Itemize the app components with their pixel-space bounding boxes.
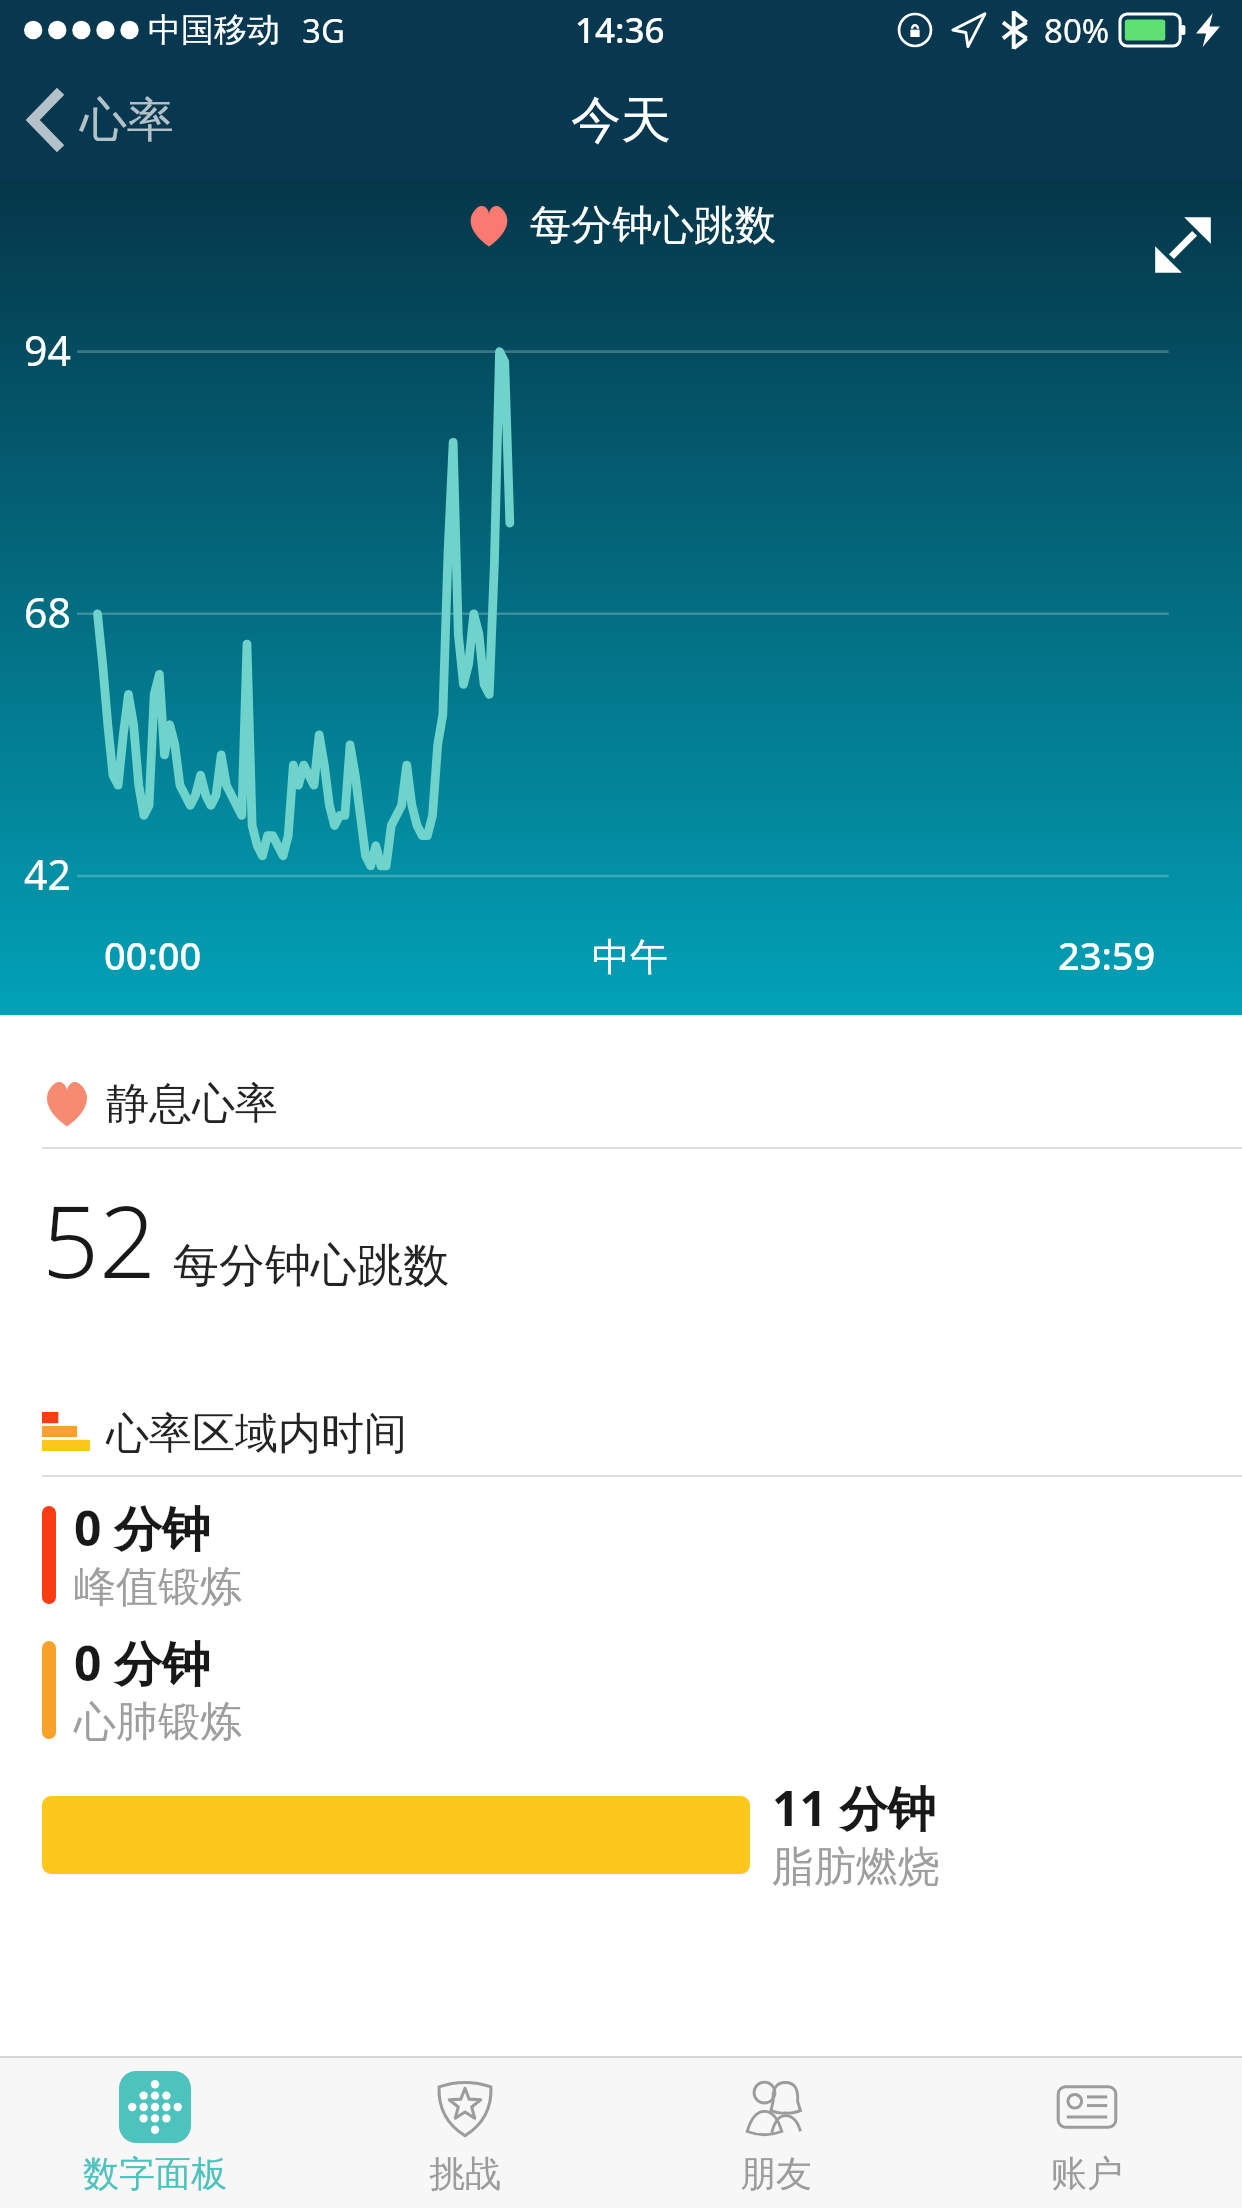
- staticText: 数字面板: [83, 2151, 227, 2196]
- button[interactable]: 数字面板: [0, 2058, 310, 2208]
- staticText: 账户: [1051, 2151, 1123, 2196]
- button[interactable]: 全屏显示图表: [1140, 202, 1226, 288]
- staticText: 52: [42, 1171, 157, 1307]
- staticText: 脂肪燃烧: [772, 1841, 940, 1894]
- staticText: 中午: [592, 933, 668, 981]
- button[interactable]: 朋友: [620, 2058, 931, 2208]
- staticText: 中国移动: [148, 9, 280, 51]
- staticText: 14:36: [575, 6, 665, 54]
- staticText: 68: [24, 584, 71, 640]
- staticText: 每分钟心跳数: [530, 200, 776, 252]
- button[interactable]: 挑战: [310, 2058, 620, 2208]
- staticText: 0 分钟: [74, 1630, 210, 1696]
- staticText: 80%: [1044, 8, 1110, 53]
- staticText: 0 分钟: [74, 1495, 210, 1561]
- button[interactable]: 返回 心率: [22, 78, 182, 162]
- staticText: 11 分钟: [772, 1775, 936, 1841]
- staticText: 00:00: [104, 929, 202, 981]
- button[interactable]: 11 分钟: [42, 1775, 1242, 1894]
- button[interactable]: 0 分钟: [42, 1630, 1242, 1749]
- staticText: 心肺锻炼: [74, 1696, 242, 1749]
- button[interactable]: 账户: [931, 2058, 1242, 2208]
- staticText: 42: [24, 846, 71, 902]
- staticText: 心率区域内时间: [106, 1407, 407, 1461]
- staticText: 今天: [571, 89, 671, 152]
- button[interactable]: 0 分钟: [42, 1495, 1242, 1614]
- staticText: 挑战: [429, 2151, 501, 2196]
- staticText: 3G: [302, 8, 345, 53]
- staticText: 23:59: [1058, 929, 1156, 981]
- staticText: 94: [24, 322, 71, 378]
- staticText: 静息心率: [106, 1077, 278, 1131]
- staticText: 心率: [80, 91, 174, 150]
- button[interactable]: 静息心率: [0, 1015, 1242, 1307]
- staticText: 朋友: [740, 2151, 812, 2196]
- staticText: 峰值锻炼: [74, 1561, 242, 1614]
- staticText: 每分钟心跳数: [173, 1237, 449, 1295]
